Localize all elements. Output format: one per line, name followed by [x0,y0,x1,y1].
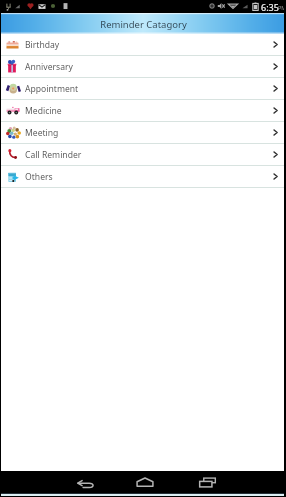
staticText: Reminder Catagory [100,18,187,31]
button[interactable]: Medicine [0,100,286,121]
button[interactable]: Appointment [0,78,286,99]
button[interactable]: Call Reminder [0,144,286,165]
staticText: Anniversary [25,61,73,73]
staticText: Meeting [25,127,59,139]
button[interactable]: Home [124,471,166,493]
staticText: Medicine [25,105,62,117]
staticText: Birthday [25,39,60,51]
staticText: 6:35 [261,1,279,13]
staticText: PM [278,4,286,11]
button[interactable]: Recent apps [185,471,227,493]
button[interactable]: Meeting [0,122,286,143]
staticText: Others [25,171,53,183]
staticText: Appointment [25,83,79,95]
staticText: Call Reminder [25,149,82,161]
button[interactable]: Anniversary [0,56,286,77]
button[interactable]: Others [0,166,286,187]
button[interactable]: Birthday [0,34,286,55]
button[interactable]: Back [63,471,105,493]
